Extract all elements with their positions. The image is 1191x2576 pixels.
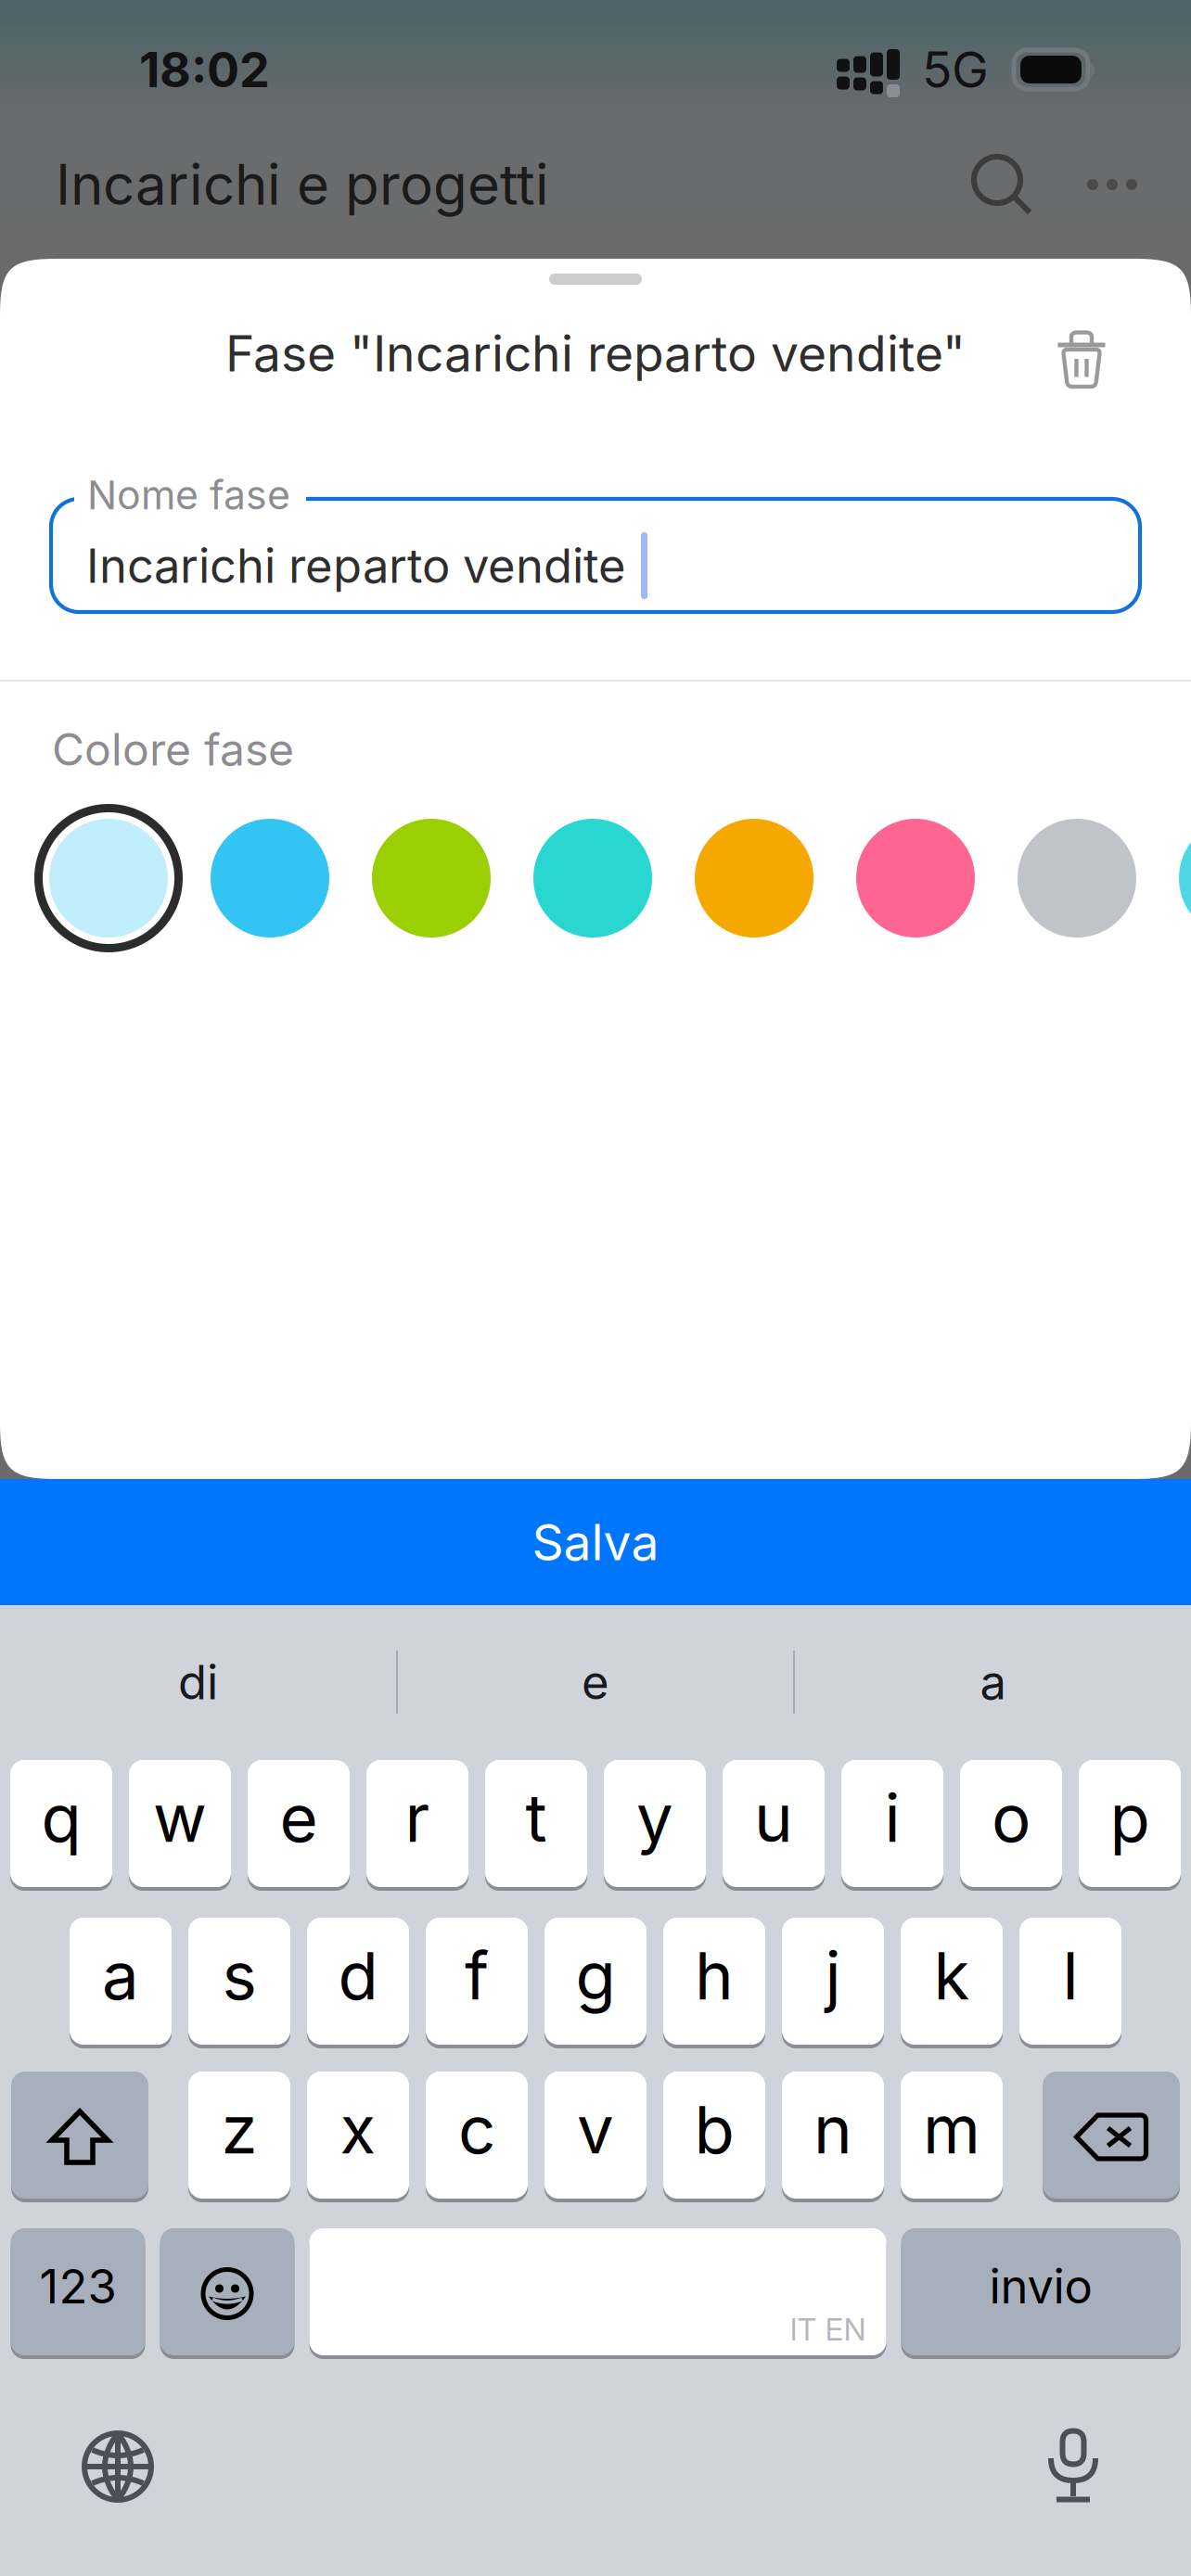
staticText: 5G xyxy=(922,40,989,99)
button[interactable]: k xyxy=(901,1918,1003,2048)
button[interactable]: p xyxy=(1079,1760,1181,1891)
staticText: Nome fase xyxy=(87,471,290,519)
staticText: Colore fase xyxy=(52,722,294,776)
staticText: w xyxy=(153,1778,207,1858)
button[interactable]: j xyxy=(782,1918,884,2048)
staticText: e xyxy=(582,1654,609,1710)
staticText: m xyxy=(923,2090,980,2169)
button[interactable]: 123 xyxy=(11,2228,145,2359)
button[interactable]: Cambia tastiera xyxy=(58,2406,178,2527)
staticText: i xyxy=(884,1778,900,1858)
staticText: r xyxy=(405,1778,430,1858)
staticText: IT EN xyxy=(790,2311,866,2348)
staticText: f xyxy=(465,1936,489,2015)
button[interactable]: q xyxy=(10,1760,112,1891)
staticText: Salva xyxy=(532,1512,659,1572)
button[interactable]: r xyxy=(366,1760,468,1891)
button[interactable]: o xyxy=(960,1760,1062,1891)
button[interactable]: b xyxy=(663,2072,765,2202)
staticText: a xyxy=(102,1936,139,2015)
staticText: a xyxy=(980,1654,1006,1710)
staticText: Incarichi e progetti xyxy=(56,151,549,218)
button[interactable]: x xyxy=(307,2072,409,2202)
staticText: o xyxy=(992,1778,1031,1858)
button[interactable]: Altre opzioni xyxy=(1076,140,1148,229)
button[interactable]: c xyxy=(426,2072,528,2202)
button[interactable]: u xyxy=(723,1760,825,1891)
staticText: h xyxy=(695,1936,734,2015)
staticText: Fase "Incarichi reparto vendite" xyxy=(225,323,966,383)
button[interactable]: Cerca xyxy=(957,140,1046,229)
staticText: v xyxy=(577,2090,614,2169)
button[interactable]: v xyxy=(544,2072,647,2202)
staticText: c xyxy=(458,2090,495,2169)
staticText: Incarichi reparto vendite xyxy=(86,537,626,594)
staticText: 123 xyxy=(39,2258,116,2315)
staticText: s xyxy=(222,1936,256,2015)
button[interactable]: f xyxy=(426,1918,528,2048)
button[interactable]: h xyxy=(663,1918,765,2048)
button[interactable]: invio xyxy=(901,2228,1180,2359)
button[interactable]: Salva xyxy=(0,1479,1191,1605)
button[interactable]: Dettatura xyxy=(1013,2406,1133,2527)
staticText: g xyxy=(576,1936,615,2015)
button[interactable]: Spazio xyxy=(309,2228,886,2359)
button[interactable]: m xyxy=(901,2072,1003,2202)
button[interactable]: d xyxy=(307,1918,409,2048)
button[interactable]: s xyxy=(188,1918,290,2048)
staticText: j xyxy=(825,1936,841,2015)
staticText: x xyxy=(340,2090,376,2169)
staticText: t xyxy=(525,1778,547,1858)
button[interactable]: t xyxy=(485,1760,587,1891)
button[interactable]: Cancella xyxy=(1043,2072,1180,2202)
button[interactable]: Elimina fase xyxy=(1031,302,1132,404)
button[interactable]: y xyxy=(604,1760,706,1891)
button[interactable]: n xyxy=(782,2072,884,2202)
button[interactable]: a xyxy=(795,1647,1191,1717)
button[interactable]: Maiuscole xyxy=(11,2072,148,2202)
staticText: 18:02 xyxy=(139,40,270,99)
button[interactable]: a xyxy=(70,1918,172,2048)
button[interactable]: l xyxy=(1019,1918,1121,2048)
button[interactable]: g xyxy=(544,1918,647,2048)
button[interactable]: e xyxy=(248,1760,350,1891)
button[interactable]: i xyxy=(841,1760,943,1891)
button[interactable]: Colore 5 xyxy=(680,804,828,952)
staticText: u xyxy=(754,1778,793,1858)
button[interactable]: Colore 8 xyxy=(1164,804,1191,952)
button[interactable]: w xyxy=(129,1760,231,1891)
button[interactable]: Colore 2 xyxy=(196,804,344,952)
button[interactable]: Emoji xyxy=(160,2228,295,2359)
staticText: y xyxy=(636,1778,673,1858)
staticText: invio xyxy=(989,2258,1092,2315)
staticText: n xyxy=(813,2090,852,2169)
button[interactable]: Colore 7 xyxy=(1003,804,1151,952)
button[interactable]: Colore 4 xyxy=(519,804,667,952)
staticText: l xyxy=(1063,1936,1078,2015)
staticText: e xyxy=(280,1778,318,1858)
button[interactable]: Colore 3 xyxy=(357,804,506,952)
staticText: z xyxy=(221,2090,257,2169)
button[interactable]: Colore 1 xyxy=(34,804,183,952)
staticText: di xyxy=(178,1654,218,1710)
button[interactable]: z xyxy=(188,2072,290,2202)
staticText: b xyxy=(694,2090,734,2169)
staticText: k xyxy=(934,1936,970,2015)
staticText: p xyxy=(1110,1778,1150,1858)
button[interactable]: Colore 6 xyxy=(841,804,990,952)
button[interactable]: e xyxy=(398,1647,793,1717)
staticText: q xyxy=(41,1778,81,1858)
staticText: d xyxy=(338,1936,378,2015)
button[interactable]: di xyxy=(0,1647,396,1717)
